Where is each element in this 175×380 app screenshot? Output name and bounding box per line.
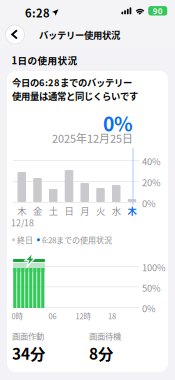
- staticText: 20%: [142, 175, 161, 189]
- staticText: 金: [33, 204, 42, 217]
- staticText: 1日の使用状況: [11, 53, 77, 67]
- staticText: 6:28までの使用状況: [42, 234, 112, 246]
- staticText: 12/18: [11, 216, 34, 229]
- staticText: 12時: [75, 310, 90, 321]
- button[interactable]: 戻る: [1, 21, 28, 48]
- staticText: 画面作動: [12, 330, 44, 342]
- staticText: 8分: [89, 342, 113, 364]
- staticText: 火: [96, 204, 105, 217]
- staticText: 画面待機: [89, 330, 121, 342]
- staticText: 06: [48, 310, 56, 321]
- staticText: 100%: [142, 260, 166, 274]
- staticText: 土: [49, 204, 58, 217]
- staticText: 2025年12月25日: [52, 130, 133, 146]
- staticText: 日: [64, 204, 73, 217]
- staticText: 18: [108, 310, 116, 321]
- staticText: 終日: [17, 234, 33, 246]
- staticText: 0時: [11, 310, 22, 321]
- staticText: 木: [127, 204, 136, 217]
- staticText: 0%: [142, 196, 156, 210]
- staticText: 50%: [142, 281, 161, 294]
- staticText: 月: [80, 204, 89, 217]
- staticText: 木: [17, 204, 26, 217]
- staticText: 34分: [12, 342, 45, 364]
- staticText: 40%: [142, 154, 161, 168]
- staticText: 0%: [142, 301, 156, 315]
- staticText: 水: [112, 204, 121, 217]
- staticText: 6:28: [25, 4, 50, 21]
- staticText: 90: [153, 5, 163, 17]
- staticText: 0%: [103, 109, 133, 137]
- staticText: バッテリー使用状況: [39, 28, 120, 41]
- staticText: 今日の6:28までのバッテリー使用量は通常と同じくらいです: [12, 75, 138, 102]
